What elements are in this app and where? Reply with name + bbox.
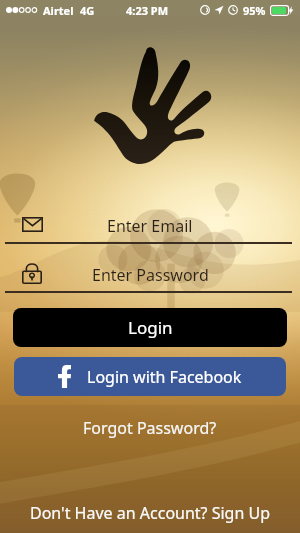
button[interactable]: Forgot Password?: [73, 414, 227, 442]
staticText: Enter Email: [107, 215, 193, 237]
button[interactable]: Login with Facebook: [14, 357, 286, 396]
button[interactable]: Don't Have an Account? Sign Up: [20, 499, 281, 527]
button[interactable]: Password: [0, 260, 300, 294]
staticText: Login with Facebook: [87, 366, 242, 388]
other: Password: [22, 262, 42, 284]
other: Email: [22, 217, 43, 232]
staticText: Airtel: [43, 3, 74, 18]
button[interactable]: Email: [0, 211, 300, 245]
staticText: 4G: [80, 3, 95, 18]
staticText: 95%: [243, 3, 266, 18]
button[interactable]: Login: [13, 308, 287, 347]
staticText: Login: [128, 316, 173, 339]
staticText: 4:23 PM: [126, 3, 169, 18]
staticText: Enter Password: [92, 264, 209, 286]
